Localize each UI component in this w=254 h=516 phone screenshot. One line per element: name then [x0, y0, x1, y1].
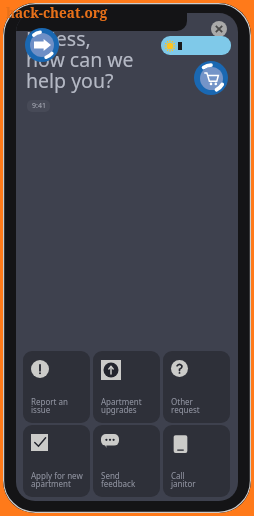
button[interactable]: Report an issue — [23, 351, 90, 423]
button[interactable]: Next — [25, 28, 59, 62]
staticText: Send feedback — [101, 470, 136, 489]
staticText: Apply for new apartment — [31, 470, 83, 489]
staticText: Call janitor — [171, 470, 196, 489]
button[interactable]: Other request — [163, 351, 230, 423]
button[interactable]: Apartment upgrades — [93, 351, 160, 423]
staticText: Hi Jess, how can we help you? — [26, 25, 134, 93]
staticText: Apartment upgrades — [101, 396, 142, 415]
button[interactable]: Close ad — [211, 21, 227, 37]
button[interactable]: Send feedback — [93, 425, 160, 497]
staticText: Report an issue — [31, 396, 68, 415]
button[interactable] — [161, 36, 231, 55]
button[interactable]: Apply for new apartment — [23, 425, 90, 497]
staticText: hack-cheat.org — [6, 4, 108, 22]
button[interactable]: Install app — [194, 61, 228, 95]
button[interactable]: Call janitor — [163, 425, 230, 497]
staticText: 9:41 — [32, 101, 46, 111]
staticText: Other request — [171, 396, 200, 415]
